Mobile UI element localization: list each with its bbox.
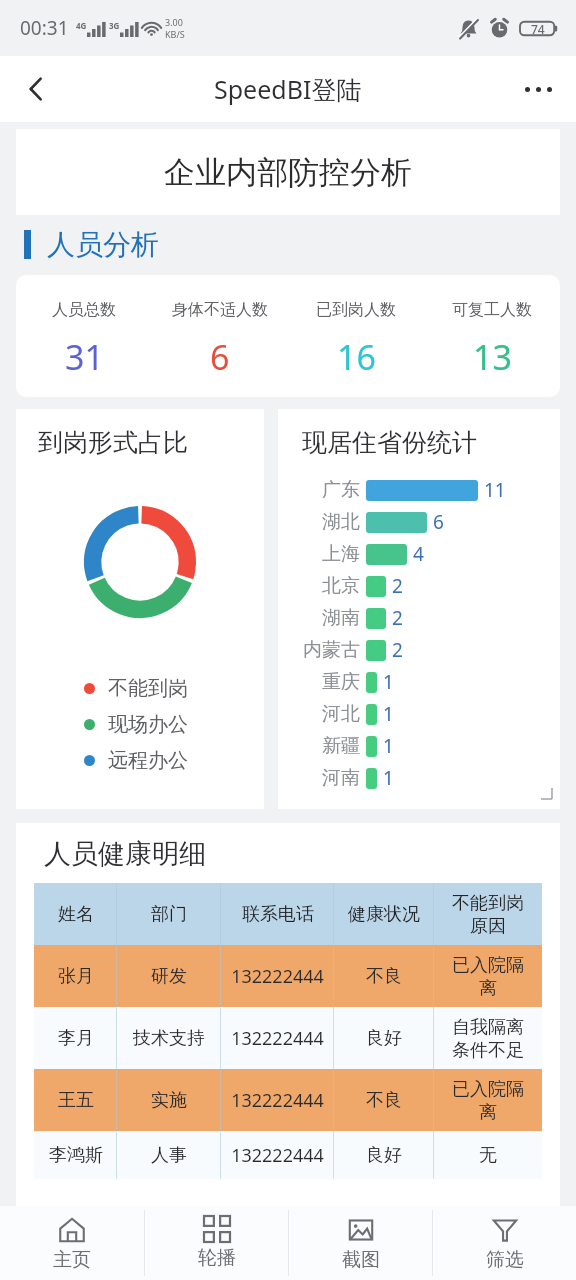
staticText: 不良: [366, 1089, 402, 1112]
staticText: 3.00: [165, 16, 183, 28]
staticText: 部门: [151, 903, 187, 926]
staticText: 2: [392, 573, 403, 599]
staticText: 远程办公: [108, 748, 188, 773]
staticText: 可复工人数: [452, 300, 532, 320]
button[interactable]: 人员总数: [16, 292, 152, 380]
button[interactable]: 企业内部防控分析: [16, 129, 560, 215]
staticText: 自我隔离 条件不足: [452, 1016, 524, 1061]
staticText: 132222444: [231, 964, 324, 989]
staticText: 11: [484, 477, 506, 503]
button[interactable]: More options: [512, 63, 564, 115]
staticText: 1: [383, 701, 394, 727]
staticText: 良好: [366, 1027, 402, 1050]
staticText: 王五: [58, 1089, 94, 1112]
staticText: 河北: [322, 702, 360, 726]
staticText: 上海: [322, 542, 360, 566]
staticText: 主页: [53, 1248, 91, 1272]
staticText: 技术支持: [133, 1027, 205, 1050]
staticText: 已入院隔 离: [452, 954, 524, 999]
staticText: 现居住省份统计: [302, 427, 477, 458]
button[interactable]: 主页: [0, 1206, 144, 1280]
staticText: 无: [479, 1144, 497, 1167]
staticText: 132222444: [231, 1088, 324, 1113]
staticText: 00:31: [20, 15, 69, 41]
staticText: 身体不适人数: [172, 300, 268, 320]
staticText: 姓名: [58, 903, 94, 926]
button[interactable]: 筛选: [433, 1206, 576, 1280]
staticText: 新疆: [322, 734, 360, 758]
button[interactable]: 已到岗人数: [288, 292, 424, 380]
staticText: 1: [383, 733, 394, 759]
staticText: 湖北: [322, 510, 360, 534]
staticText: 实施: [151, 1089, 187, 1112]
staticText: 人员健康明细: [44, 837, 206, 871]
staticText: 2: [392, 637, 403, 663]
staticText: 李月: [58, 1027, 94, 1050]
staticText: 河南: [322, 766, 360, 790]
staticText: 北京: [322, 574, 360, 598]
staticText: 企业内部防控分析: [164, 153, 412, 192]
staticText: 不能到岗: [108, 676, 188, 701]
staticText: 已入院隔 离: [452, 1078, 524, 1123]
staticText: 6: [210, 334, 230, 380]
button[interactable]: 截图: [289, 1206, 432, 1280]
staticText: 良好: [366, 1144, 402, 1167]
staticText: 到岗形式占比: [38, 427, 188, 458]
staticText: 132222444: [231, 1026, 324, 1051]
button[interactable]: Back: [10, 63, 62, 115]
button[interactable]: 现居住省份统计: [278, 409, 560, 809]
staticText: 已到岗人数: [316, 300, 396, 320]
staticText: 人员总数: [52, 300, 116, 320]
button[interactable]: 轮播: [145, 1206, 288, 1280]
staticText: 6: [433, 509, 444, 535]
staticText: 截图: [342, 1248, 380, 1272]
button[interactable]: 到岗形式占比: [16, 409, 264, 809]
button[interactable]: 人员健康明细: [16, 823, 560, 1206]
staticText: 16: [337, 334, 376, 380]
staticText: 现场办公: [108, 712, 188, 737]
staticText: 内蒙古: [303, 638, 360, 662]
staticText: 健康状况: [348, 903, 420, 926]
staticText: 31: [65, 334, 104, 380]
staticText: 13: [473, 334, 512, 380]
staticText: KB/S: [165, 28, 185, 40]
staticText: 1: [383, 765, 394, 791]
staticText: 研发: [151, 965, 187, 988]
button[interactable]: 可复工人数: [424, 292, 560, 380]
staticText: 筛选: [486, 1248, 524, 1272]
staticText: 不能到岗 原因: [452, 892, 524, 937]
staticText: 人事: [151, 1144, 187, 1167]
staticText: 2: [392, 605, 403, 631]
staticText: 3G: [109, 20, 120, 31]
staticText: 联系电话: [242, 903, 314, 926]
staticText: 人员分析: [47, 227, 159, 262]
button[interactable]: 身体不适人数: [152, 292, 288, 380]
staticText: 湖南: [322, 606, 360, 630]
staticText: 4: [413, 541, 424, 567]
staticText: 4G: [76, 20, 87, 31]
staticText: 不良: [366, 965, 402, 988]
staticText: 李鸿斯: [49, 1144, 103, 1167]
staticText: 轮播: [198, 1246, 236, 1270]
staticText: 重庆: [322, 670, 360, 694]
staticText: 74: [531, 21, 545, 37]
staticText: SpeedBI登陆: [214, 72, 362, 106]
staticText: 张月: [58, 965, 94, 988]
staticText: 广东: [322, 478, 360, 502]
staticText: 1: [383, 669, 394, 695]
staticText: 132222444: [231, 1143, 324, 1168]
